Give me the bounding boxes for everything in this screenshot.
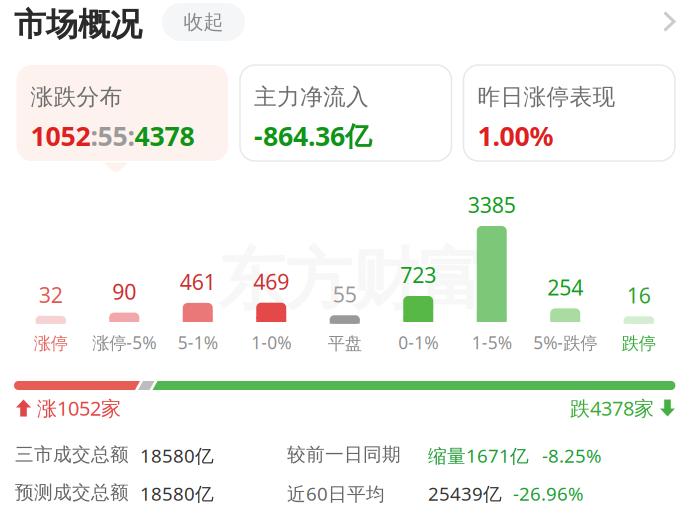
staticText: 1052 bbox=[30, 118, 90, 153]
staticText: 723 bbox=[400, 261, 436, 289]
button[interactable]: 主力净流入 bbox=[240, 65, 451, 161]
staticText: 跌停 bbox=[622, 333, 656, 354]
staticText: 市场概况 bbox=[14, 5, 142, 44]
staticText: 90 bbox=[112, 277, 136, 306]
staticText: 16 bbox=[627, 281, 651, 309]
staticText: 32 bbox=[39, 280, 63, 309]
staticText: 0-1% bbox=[398, 331, 438, 354]
staticText: -8.25% bbox=[542, 443, 602, 468]
staticText: 三市成交总额 bbox=[15, 443, 129, 466]
staticText: 55 bbox=[333, 280, 357, 308]
staticText: 涨停 bbox=[34, 333, 68, 354]
staticText: 近60日平均 bbox=[287, 481, 385, 506]
staticText: 主力净流入 bbox=[254, 83, 369, 111]
staticText: 461 bbox=[180, 267, 216, 296]
staticText: : bbox=[90, 118, 97, 153]
button[interactable]: 收起 bbox=[162, 3, 245, 41]
staticText: 涨停-5% bbox=[92, 331, 156, 354]
button[interactable]: 涨跌分布 bbox=[16, 65, 228, 161]
staticText: 18580亿 bbox=[140, 481, 214, 506]
staticText: 5%-跌停 bbox=[533, 331, 597, 354]
staticText: 东方财富 bbox=[218, 239, 486, 321]
staticText: 涨1052家 bbox=[37, 395, 121, 421]
staticText: 1-5% bbox=[472, 331, 512, 354]
staticText: 55 bbox=[97, 118, 127, 153]
staticText: 18580亿 bbox=[140, 443, 214, 468]
staticText: 1-0% bbox=[251, 331, 291, 354]
staticText: 4378 bbox=[134, 118, 194, 153]
staticText: 预测成交总额 bbox=[15, 481, 129, 504]
staticText: -864.36亿 bbox=[254, 118, 372, 153]
staticText: 1.00% bbox=[477, 118, 553, 153]
staticText: 469 bbox=[253, 267, 289, 296]
staticText: 较前一日同期 bbox=[287, 443, 401, 466]
button[interactable]: 昨日涨停表现 bbox=[463, 65, 675, 161]
staticText: 254 bbox=[547, 273, 583, 301]
staticText: 平盘 bbox=[328, 333, 362, 354]
staticText: : bbox=[127, 118, 134, 153]
staticText: 5-1% bbox=[178, 331, 218, 354]
staticText: 昨日涨停表现 bbox=[477, 83, 615, 111]
staticText: 收起 bbox=[183, 10, 223, 34]
staticText: 跌4378家 bbox=[570, 395, 654, 421]
staticText: 涨跌分布 bbox=[30, 83, 122, 111]
staticText: 25439亿 bbox=[428, 481, 502, 506]
button[interactable]: 展开详情 bbox=[662, 10, 676, 33]
staticText: 缩量1671亿 bbox=[428, 443, 529, 468]
staticText: -26.96% bbox=[513, 481, 584, 506]
staticText: 3385 bbox=[468, 191, 516, 219]
